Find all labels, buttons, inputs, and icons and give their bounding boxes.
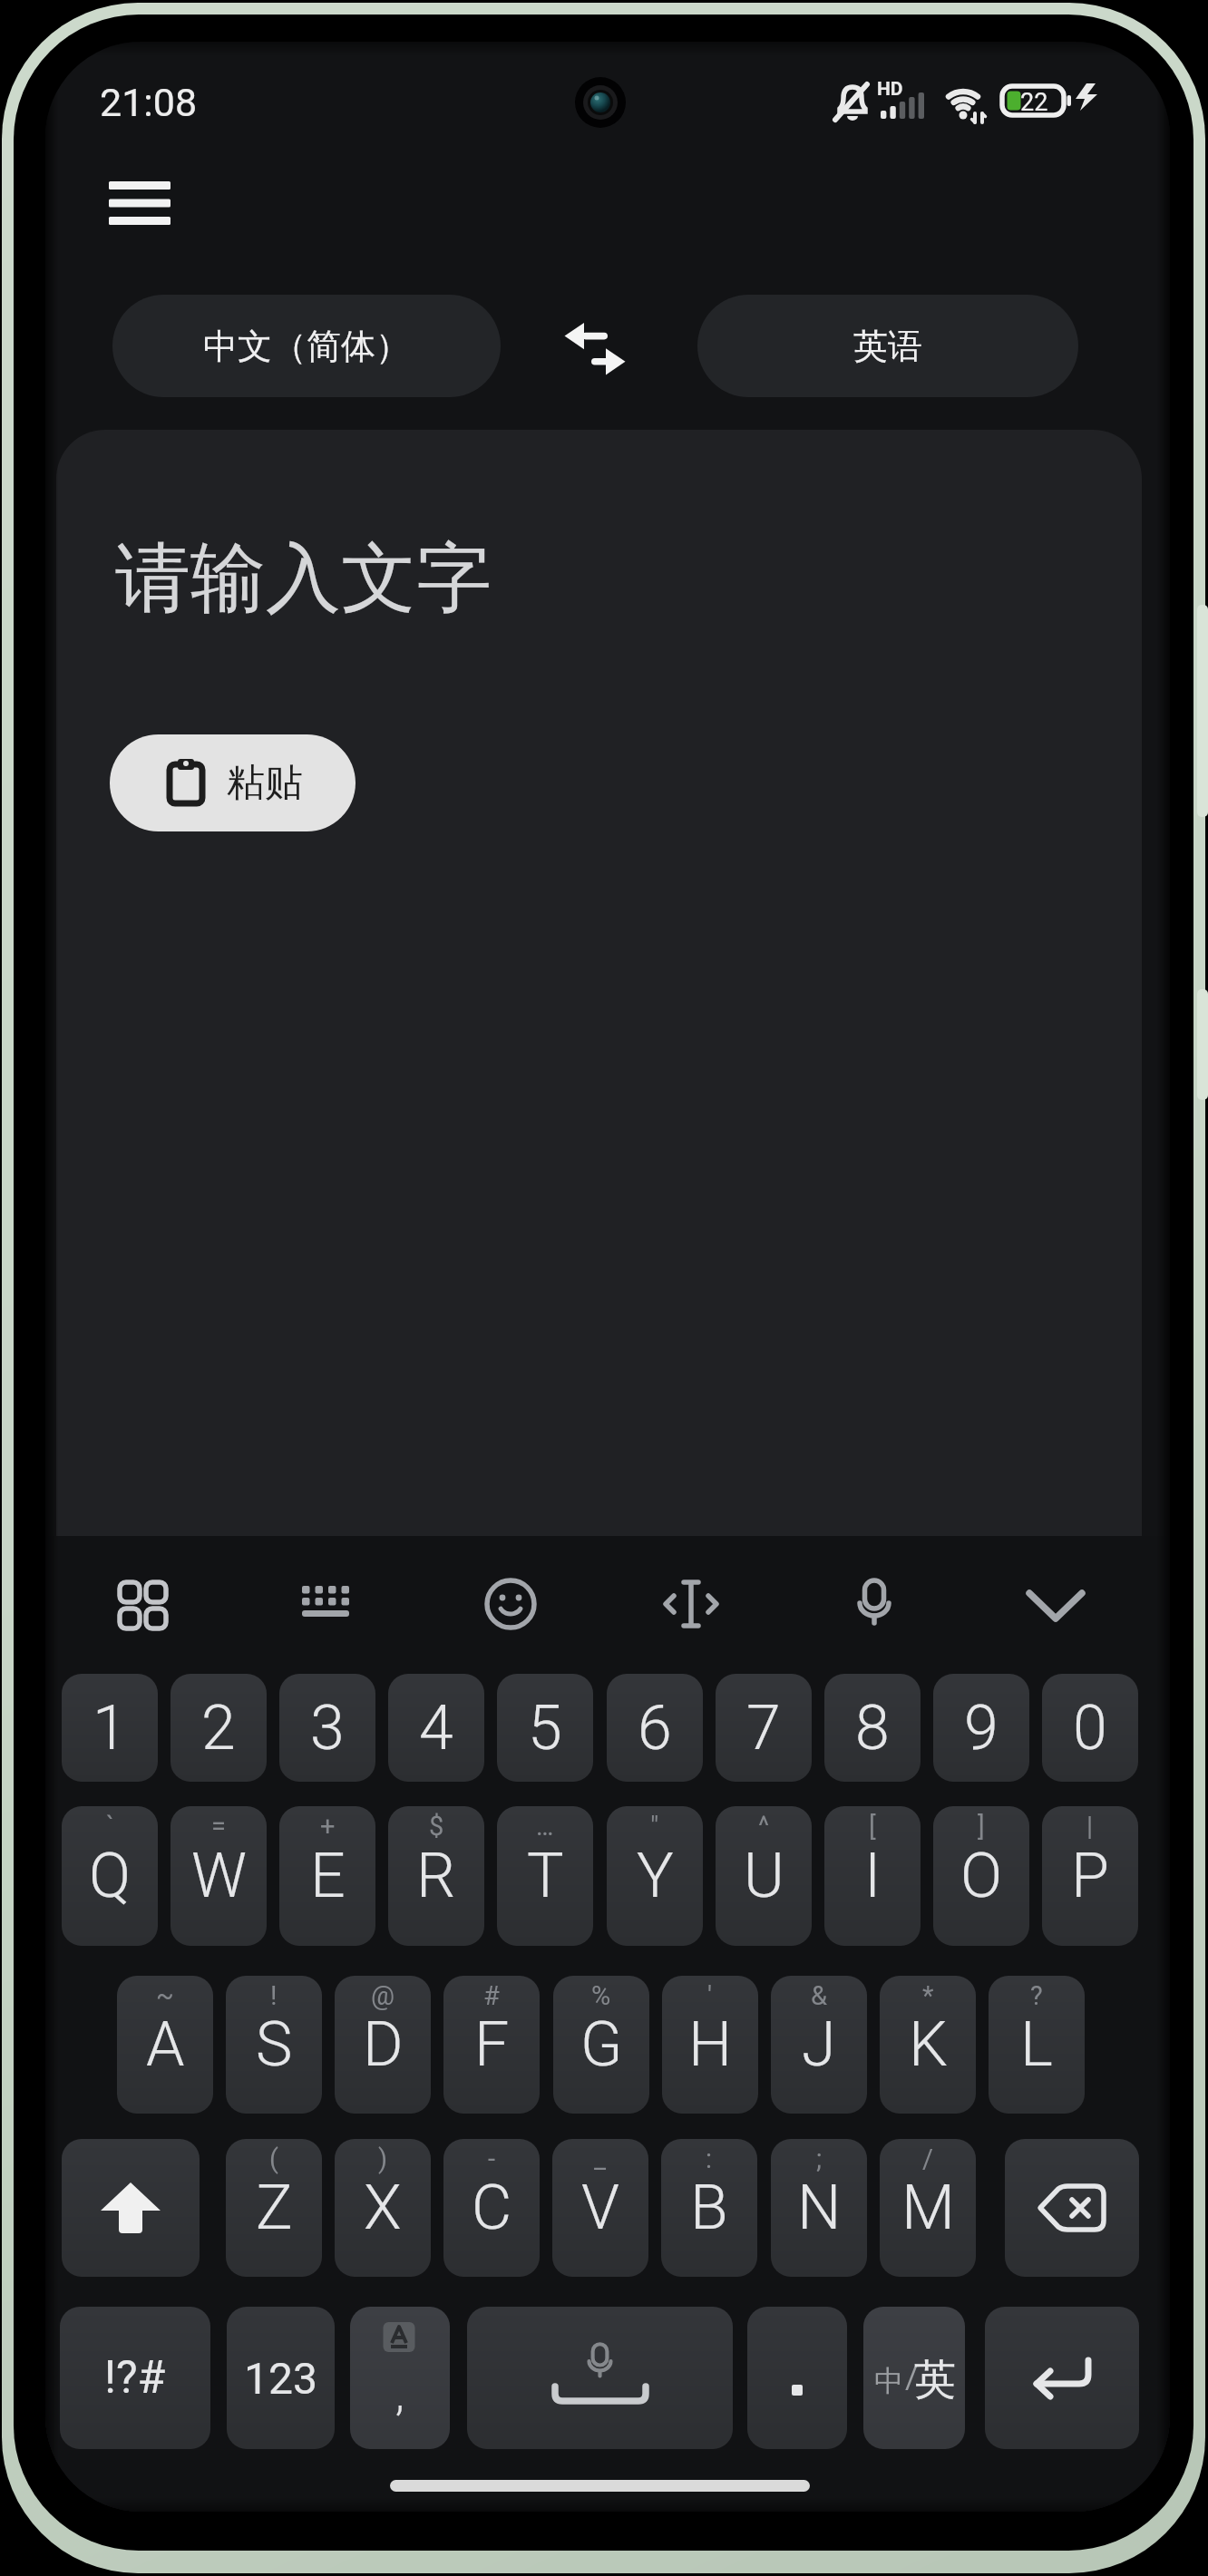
button[interactable]: 1 xyxy=(62,1674,158,1782)
button[interactable]: 6 xyxy=(607,1674,703,1782)
staticText: R xyxy=(416,1840,456,1912)
staticText: Z xyxy=(256,2172,293,2244)
button[interactable]: U xyxy=(716,1806,812,1946)
staticText: " xyxy=(650,1811,659,1842)
button[interactable]: W xyxy=(170,1806,267,1946)
button[interactable]: L xyxy=(989,1976,1085,2114)
staticText: _ xyxy=(594,2143,607,2174)
staticText: ) xyxy=(378,2143,388,2174)
button[interactable]: O xyxy=(933,1806,1029,1946)
button[interactable]: G xyxy=(553,1976,649,2114)
staticText: Q xyxy=(89,1840,132,1912)
button[interactable]: Q xyxy=(62,1806,158,1946)
button[interactable]: E xyxy=(279,1806,375,1946)
staticText: [ xyxy=(869,1811,876,1842)
button[interactable] xyxy=(98,170,181,236)
button[interactable]: M xyxy=(880,2139,976,2277)
staticText: 粘贴 xyxy=(227,759,303,807)
staticText: 21:08 xyxy=(100,80,198,125)
button[interactable]: 中文（简体） xyxy=(112,295,501,397)
button[interactable]: , xyxy=(350,2307,450,2449)
staticText: D xyxy=(363,2008,404,2081)
staticText: , xyxy=(395,2368,404,2422)
button[interactable]: 4 xyxy=(388,1674,484,1782)
button[interactable]: 5 xyxy=(497,1674,593,1782)
button[interactable]: 123 xyxy=(227,2307,335,2449)
staticText: C xyxy=(472,2172,512,2244)
staticText: ! xyxy=(270,1980,278,2011)
button[interactable] xyxy=(1005,2139,1139,2277)
staticText: 4 xyxy=(419,1692,453,1764)
staticText: V xyxy=(581,2172,619,2244)
button[interactable]: 中 xyxy=(863,2307,965,2449)
button[interactable]: H xyxy=(662,1976,758,2114)
button[interactable]: 3 xyxy=(279,1674,375,1782)
button[interactable] xyxy=(985,2307,1139,2449)
button[interactable]: I xyxy=(824,1806,921,1946)
button[interactable] xyxy=(553,303,644,394)
button[interactable] xyxy=(102,1563,184,1645)
staticText: N xyxy=(797,2172,842,2244)
staticText: 英语 xyxy=(853,325,922,368)
button[interactable]: 0 xyxy=(1042,1674,1138,1782)
button[interactable]: 英语 xyxy=(697,295,1078,397)
staticText: E xyxy=(310,1840,346,1912)
button[interactable]: X xyxy=(335,2139,431,2277)
staticText: : xyxy=(706,2143,713,2174)
button[interactable]: 9 xyxy=(933,1674,1029,1782)
button[interactable]: F xyxy=(443,1976,540,2114)
button[interactable]: S xyxy=(226,1976,322,2114)
button[interactable]: B xyxy=(661,2139,757,2277)
button[interactable] xyxy=(1015,1563,1096,1645)
staticText: G xyxy=(580,2008,623,2081)
button[interactable]: N xyxy=(771,2139,867,2277)
button[interactable]: 2 xyxy=(170,1674,267,1782)
staticText: 22 xyxy=(1020,88,1048,117)
button[interactable]: 粘贴 xyxy=(110,734,356,831)
staticText: U xyxy=(744,1840,784,1912)
button[interactable]: R xyxy=(388,1806,484,1946)
button[interactable]: D xyxy=(335,1976,431,2114)
staticText: J xyxy=(802,2008,836,2081)
button[interactable] xyxy=(747,2307,847,2449)
button[interactable] xyxy=(833,1563,915,1645)
staticText: # xyxy=(483,1980,500,2011)
staticText: Y xyxy=(637,1840,674,1912)
button[interactable] xyxy=(467,2307,733,2449)
button[interactable]: A xyxy=(117,1976,213,2114)
staticText: A xyxy=(146,2008,185,2081)
staticText: 123 xyxy=(244,2353,317,2404)
staticText: F xyxy=(474,2008,510,2081)
staticText: ^ xyxy=(758,1811,770,1842)
staticText: I xyxy=(864,1840,882,1912)
button[interactable]: Y xyxy=(607,1806,703,1946)
button[interactable]: K xyxy=(880,1976,976,2114)
staticText: % xyxy=(591,1980,611,2011)
staticText: P xyxy=(1071,1840,1109,1912)
button[interactable] xyxy=(286,1563,367,1645)
staticText: L xyxy=(1020,2008,1053,2081)
staticText: - xyxy=(488,2143,496,2174)
button[interactable]: C xyxy=(443,2139,540,2277)
staticText: / xyxy=(922,2143,933,2174)
button[interactable] xyxy=(62,2139,200,2277)
staticText: X xyxy=(364,2172,402,2244)
staticText: 中文（简体） xyxy=(203,325,410,368)
button[interactable]: 8 xyxy=(824,1674,921,1782)
staticText: … xyxy=(536,1811,554,1842)
staticText: + xyxy=(320,1811,336,1842)
button[interactable]: V xyxy=(552,2139,648,2277)
staticText: 1 xyxy=(93,1692,127,1764)
button[interactable]: J xyxy=(771,1976,867,2114)
button[interactable] xyxy=(470,1563,551,1645)
staticText: M xyxy=(901,2172,955,2244)
staticText: ~ xyxy=(156,1980,174,2011)
button[interactable]: !?# xyxy=(60,2307,210,2449)
staticText: = xyxy=(211,1811,226,1842)
button[interactable]: T xyxy=(497,1806,593,1946)
button[interactable] xyxy=(650,1563,732,1645)
staticText: ? xyxy=(1030,1980,1043,2011)
button[interactable]: 7 xyxy=(716,1674,812,1782)
button[interactable]: Z xyxy=(226,2139,322,2277)
button[interactable]: P xyxy=(1042,1806,1138,1946)
